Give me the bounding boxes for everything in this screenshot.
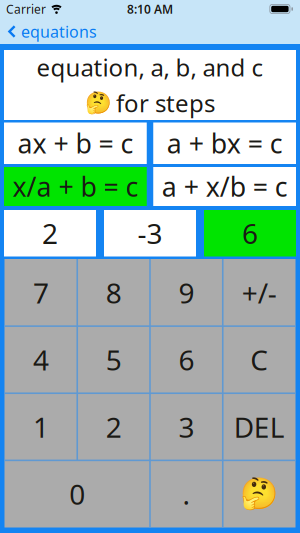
button[interactable]: 6 <box>204 210 296 256</box>
button[interactable]: 5 <box>77 326 150 393</box>
button[interactable]: 1 <box>4 393 77 460</box>
button[interactable]: 7 <box>4 259 77 326</box>
staticText: 8:10 AM <box>127 1 173 17</box>
staticText: 9 <box>178 274 194 311</box>
staticText: 5 <box>106 341 122 378</box>
button[interactable]: 9 <box>150 259 223 326</box>
button[interactable]: a + bx = c <box>153 122 296 164</box>
staticText: 7 <box>33 274 49 311</box>
button[interactable]: -3 <box>104 210 196 256</box>
staticText: 3 <box>178 408 194 445</box>
staticText: C <box>250 341 268 378</box>
staticText: DEL <box>234 408 285 445</box>
staticText: for steps <box>116 87 215 119</box>
staticText: 2 <box>42 215 58 252</box>
button[interactable]: 2 <box>77 393 150 460</box>
staticText: 🤔 <box>240 476 278 511</box>
staticText: +/- <box>242 274 277 311</box>
button[interactable]: Back <box>0 18 103 42</box>
staticText: 6 <box>242 215 258 252</box>
button[interactable]: Show steps <box>223 460 296 527</box>
staticText: 6 <box>178 341 194 378</box>
staticText: . <box>182 475 190 512</box>
staticText: 2 <box>106 408 122 445</box>
button[interactable]: C <box>223 326 296 393</box>
staticText: equations <box>21 21 97 42</box>
button[interactable]: x/a + b = c <box>4 167 147 206</box>
staticText: 8 <box>106 274 122 311</box>
button[interactable]: +/- <box>223 259 296 326</box>
button[interactable]: DEL <box>223 393 296 460</box>
button[interactable]: 3 <box>150 393 223 460</box>
staticText: 1 <box>33 408 49 445</box>
staticText: 🤔 <box>85 91 112 115</box>
button[interactable]: 2 <box>4 210 96 256</box>
button[interactable]: a + x/b = c <box>153 167 296 206</box>
button[interactable]: 4 <box>4 326 77 393</box>
staticText: ax + b = c <box>17 125 133 161</box>
staticText: a + x/b = c <box>162 169 288 204</box>
staticText: Carrier <box>6 1 46 17</box>
button[interactable]: 0 <box>4 460 150 527</box>
staticText: 0 <box>69 475 85 512</box>
button[interactable]: . <box>150 460 223 527</box>
staticText: -3 <box>137 215 162 252</box>
button[interactable]: ax + b = c <box>4 122 147 164</box>
staticText: x/a + b = c <box>12 169 138 204</box>
staticText: a + bx = c <box>167 125 283 161</box>
staticText: 4 <box>33 341 49 378</box>
button[interactable]: 6 <box>150 326 223 393</box>
staticText: equation, a, b, and c <box>36 51 263 83</box>
button[interactable]: 8 <box>77 259 150 326</box>
